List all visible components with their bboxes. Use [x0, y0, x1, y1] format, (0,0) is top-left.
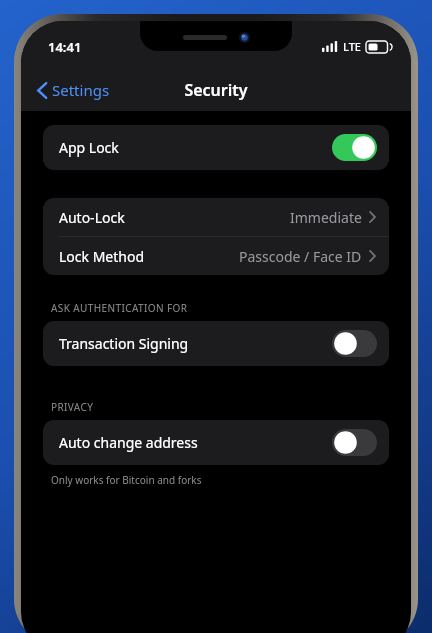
- staticText: PRIVACY: [51, 400, 94, 414]
- other: Off: [332, 429, 377, 456]
- staticText: ASK AUTHENTICATION FOR: [51, 301, 188, 315]
- staticText: Only works for Bitcoin and forks: [51, 473, 202, 487]
- staticText: Immediate: [290, 208, 362, 227]
- staticText: LTE: [343, 39, 361, 54]
- button[interactable]: Lock Method: [43, 237, 389, 275]
- staticText: Settings: [52, 80, 110, 100]
- button[interactable]: App Lock: [43, 125, 389, 170]
- staticText: 14:41: [48, 38, 82, 56]
- staticText: Auto change address: [59, 433, 332, 452]
- staticText: Auto-Lock: [59, 208, 290, 227]
- button[interactable]: Auto-Lock: [43, 198, 389, 236]
- staticText: Security: [184, 79, 248, 101]
- staticText: Passcode / Face ID: [239, 247, 362, 266]
- staticText: App Lock: [59, 138, 332, 157]
- other: On: [332, 134, 377, 161]
- button[interactable]: Settings: [21, 74, 120, 106]
- button[interactable]: Transaction Signing: [43, 321, 389, 366]
- staticText: Lock Method: [59, 247, 239, 266]
- staticText: Transaction Signing: [59, 334, 332, 353]
- other: Off: [332, 330, 377, 357]
- button[interactable]: Auto change address: [43, 420, 389, 465]
